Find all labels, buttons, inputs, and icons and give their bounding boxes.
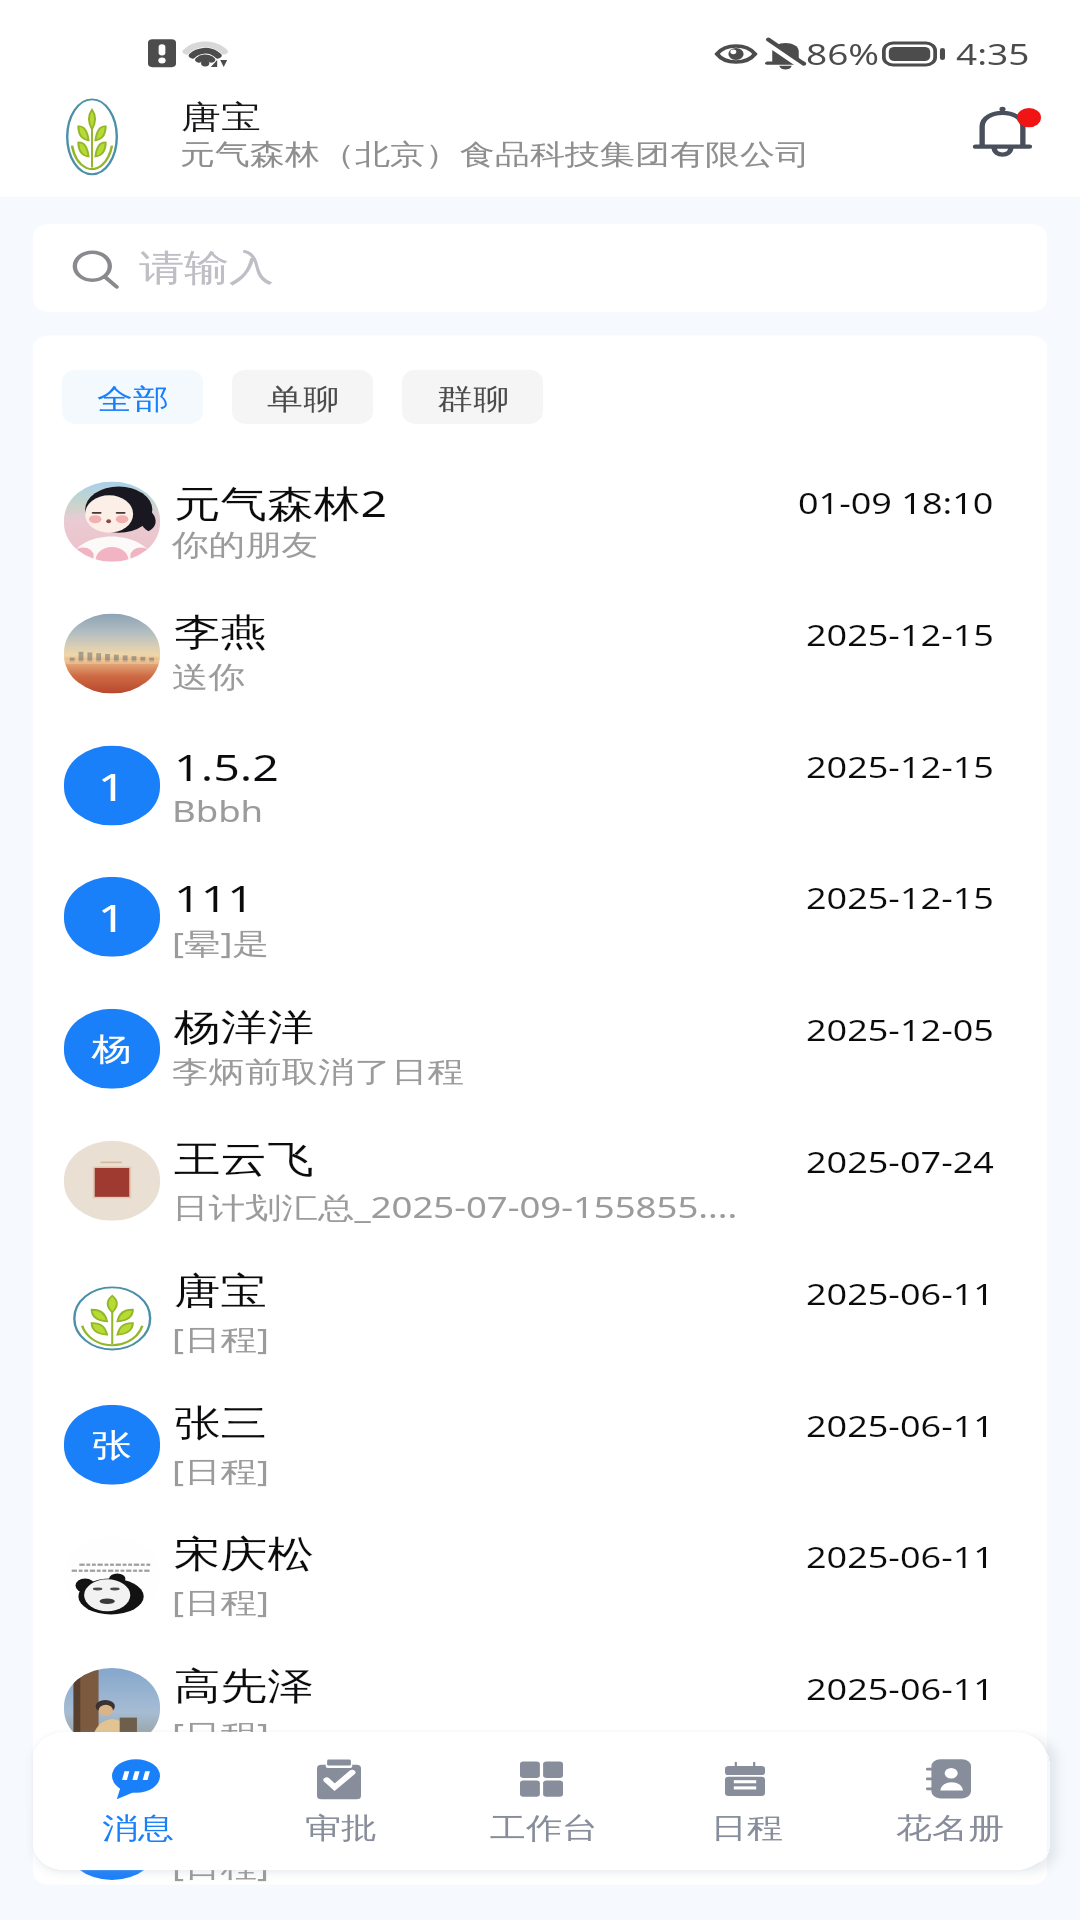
staticText: 张 [92, 1426, 132, 1466]
staticText: 2025-06-11 [806, 1802, 994, 1841]
staticText: 日计划汇总_2025-07-09-155855.... [172, 1186, 812, 1226]
staticText: [日程] [172, 1582, 812, 1622]
staticText: 杨 [92, 1030, 132, 1070]
staticText: 111 [174, 872, 254, 922]
staticText: 2025-06-11 [806, 1406, 994, 1446]
button[interactable]: 单聊 [232, 370, 373, 424]
staticText: 01-09 18:10 [798, 483, 994, 522]
staticText: [日程] [172, 1714, 812, 1754]
staticText: 高先泽 [174, 1663, 314, 1710]
staticText: 4:35 [956, 33, 1030, 73]
button[interactable]: 消息 [35, 1732, 237, 1870]
button[interactable]: 高先泽 [33, 1642, 1047, 1774]
button[interactable]: 王云飞 [33, 1115, 1047, 1246]
button[interactable]: 群聊 [402, 370, 543, 424]
staticText: 杨洋洋 [174, 1004, 314, 1051]
staticText: 唐宝 [174, 1268, 268, 1315]
staticText: 2025-07-24 [806, 1142, 994, 1182]
staticText: 2025-12-05 [806, 1010, 994, 1050]
button[interactable]: 日程 [644, 1732, 846, 1870]
staticText: 审批 [305, 1810, 377, 1846]
staticText: 1 [98, 760, 126, 812]
button[interactable]: 全部 [62, 370, 203, 424]
staticText: Bbbh [172, 791, 812, 831]
staticText: [日程] [172, 1846, 812, 1885]
button[interactable]: 张 [33, 1379, 1047, 1510]
staticText: 李燕 [174, 609, 268, 656]
button[interactable]: 1 [33, 720, 1047, 851]
button[interactable]: Notifications [957, 98, 1047, 170]
button[interactable]: 杨 [33, 983, 1047, 1114]
staticText: 全部 [97, 381, 169, 417]
staticText: 2025-06-11 [806, 1670, 994, 1709]
button[interactable]: 1 [33, 851, 1047, 982]
button[interactable]: 李 [33, 1774, 1047, 1885]
staticText: [晕]是 [172, 922, 812, 962]
button[interactable]: 元气森林2 [33, 456, 1047, 587]
staticText: 送你 [172, 659, 812, 696]
staticText: 2025-12-15 [806, 747, 994, 786]
staticText: 群聊 [437, 381, 509, 417]
button[interactable]: 唐宝 [33, 1247, 1047, 1378]
button[interactable]: 宋庆松 [33, 1510, 1047, 1642]
staticText: 你的朋友 [172, 527, 812, 564]
staticText: 张三 [174, 1400, 268, 1447]
staticText: 消息 [102, 1810, 174, 1846]
staticText: 2025-06-11 [806, 1274, 994, 1314]
staticText: 花名册 [896, 1810, 1004, 1846]
staticText: 1 [98, 891, 126, 943]
staticText: [日程] [172, 1450, 812, 1490]
staticText: 元气森林2 [174, 477, 388, 528]
button[interactable]: 花名册 [847, 1732, 1047, 1870]
staticText: 单聊 [267, 381, 339, 417]
staticText: 86% [806, 33, 880, 73]
staticText: [日程] [172, 1318, 812, 1358]
button[interactable]: 审批 [238, 1732, 440, 1870]
staticText: 日程 [711, 1810, 783, 1846]
staticText: 2025-12-15 [806, 878, 994, 918]
staticText: 李炳前取消了日程 [172, 1054, 812, 1091]
staticText: 唐宝 [181, 97, 261, 137]
staticText: 宋庆松 [174, 1531, 314, 1578]
staticText: 工作台 [490, 1810, 598, 1846]
staticText: 1.5.2 [174, 741, 279, 791]
staticText: 王云飞 [174, 1136, 314, 1183]
staticText: 李 [92, 1821, 132, 1861]
button[interactable]: 请输入 [33, 224, 1047, 312]
staticText: 2025-12-15 [806, 615, 994, 654]
button[interactable]: 工作台 [441, 1732, 643, 1870]
button[interactable]: 李燕 [33, 588, 1047, 719]
staticText: 2025-06-11 [806, 1538, 994, 1577]
staticText: 元气森林（北京）食品科技集团有限公司 [180, 137, 810, 172]
staticText: 请输入 [139, 246, 274, 291]
